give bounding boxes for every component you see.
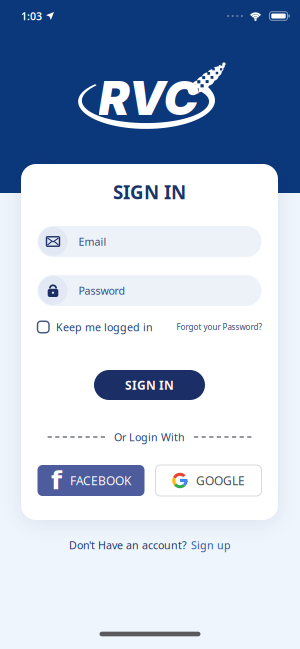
button[interactable]: Sign up bbox=[191, 538, 231, 552]
button[interactable]: Forgot your Password? bbox=[176, 322, 261, 332]
staticText: Or Login With bbox=[114, 430, 185, 444]
staticText: Password bbox=[78, 283, 125, 298]
staticText: RVC bbox=[98, 70, 198, 126]
staticText: 1:03 bbox=[21, 9, 42, 23]
staticText: Don't Have an account? bbox=[69, 538, 187, 552]
staticText: FACEBOOK bbox=[70, 472, 131, 488]
button[interactable]: Password bbox=[37, 275, 261, 306]
staticText: f bbox=[51, 466, 62, 495]
staticText: Sign up bbox=[191, 538, 231, 552]
staticText: Forgot your Password? bbox=[176, 322, 261, 332]
staticText: GOOGLE bbox=[196, 472, 245, 488]
staticText: SIGN IN bbox=[125, 377, 174, 393]
button[interactable]: Keep me logged in bbox=[37, 320, 153, 334]
staticText: Email bbox=[78, 234, 106, 249]
button[interactable]: Email bbox=[37, 226, 261, 257]
button[interactable]: GOOGLE bbox=[155, 465, 261, 496]
staticText: SIGN IN bbox=[113, 180, 186, 204]
button[interactable]: SIGN IN bbox=[94, 370, 205, 400]
staticText: Keep me logged in bbox=[56, 320, 153, 334]
button[interactable]: f bbox=[37, 465, 144, 496]
